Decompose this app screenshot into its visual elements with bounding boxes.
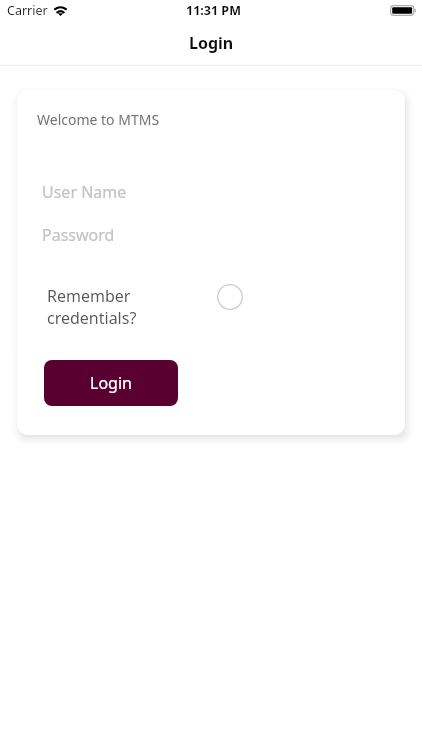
staticText: Login — [90, 372, 132, 394]
button[interactable]: Password — [36, 219, 386, 251]
button[interactable]: User Name — [36, 176, 386, 208]
staticText: Login — [189, 32, 234, 54]
staticText: Welcome to MTMS — [37, 110, 160, 129]
button[interactable]: Login — [44, 360, 178, 406]
staticText: Carrier — [7, 2, 48, 19]
button[interactable]: Remember credentials toggle — [215, 282, 244, 311]
staticText: User Name — [42, 181, 127, 203]
button[interactable]: Remember credentials? — [41, 281, 161, 333]
staticText: Remember credentials? — [47, 285, 137, 329]
staticText: Password — [42, 224, 115, 246]
staticText: 11:31 PM — [186, 2, 241, 19]
